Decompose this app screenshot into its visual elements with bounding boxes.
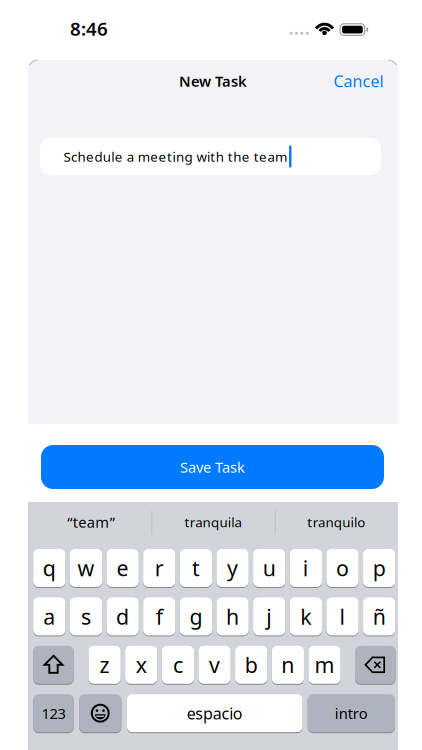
button[interactable]: n [272, 646, 304, 684]
staticText: l [339, 602, 345, 630]
staticText: j [266, 602, 272, 630]
button[interactable]: k [290, 597, 322, 635]
staticText: m [314, 651, 334, 679]
button[interactable]: Task title [40, 138, 381, 175]
staticText: f [156, 602, 163, 630]
staticText: u [263, 554, 276, 582]
button[interactable]: f [143, 597, 175, 635]
staticText: New Task [179, 71, 247, 91]
button[interactable]: t [180, 549, 212, 587]
staticText: o [336, 554, 349, 582]
button[interactable]: intro [308, 694, 395, 732]
button[interactable]: tranquilo [277, 502, 395, 542]
button[interactable]: l [326, 597, 359, 635]
button[interactable]: “team” [32, 502, 150, 542]
staticText: k [300, 602, 311, 630]
staticText: e [117, 554, 129, 582]
staticText: intro [335, 703, 368, 723]
staticText: z [100, 651, 110, 679]
button[interactable]: i [290, 549, 322, 587]
staticText: c [173, 651, 183, 679]
staticText: tranquilo [307, 513, 365, 531]
staticText: a [43, 602, 55, 630]
button[interactable]: b [235, 646, 267, 684]
staticText: p [373, 554, 386, 582]
button[interactable]: Delete [355, 646, 396, 684]
staticText: q [43, 554, 56, 582]
button[interactable]: z [88, 646, 121, 684]
button[interactable]: 123 [33, 694, 74, 732]
button[interactable]: y [216, 549, 249, 587]
button[interactable]: Cancel [333, 70, 383, 92]
button[interactable]: j [253, 597, 285, 635]
staticText: y [227, 554, 238, 582]
button[interactable]: s [70, 597, 102, 635]
button[interactable]: ñ [363, 597, 395, 635]
staticText: tranquila [184, 513, 241, 531]
staticText: g [189, 602, 202, 630]
button[interactable]: Emoji [79, 694, 121, 732]
button[interactable]: q [33, 549, 65, 587]
staticText: v [209, 651, 220, 679]
button[interactable]: h [216, 597, 249, 635]
staticText: espacio [187, 703, 243, 724]
staticText: t [192, 554, 200, 582]
button[interactable]: d [106, 597, 139, 635]
button[interactable]: m [308, 646, 341, 684]
button[interactable]: e [106, 549, 139, 587]
staticText: i [303, 554, 309, 582]
staticText: h [226, 602, 239, 630]
staticText: r [155, 554, 164, 582]
button[interactable]: p [363, 549, 395, 587]
button[interactable]: c [162, 646, 194, 684]
button[interactable]: tranquila [154, 502, 272, 542]
staticText: b [245, 651, 258, 679]
button[interactable]: w [70, 549, 102, 587]
staticText: Cancel [333, 70, 383, 92]
button[interactable]: Shift [33, 646, 74, 684]
staticText: x [136, 651, 147, 679]
button[interactable]: x [125, 646, 157, 684]
staticText: ñ [373, 602, 386, 630]
staticText: Schedule a meeting with the team [63, 148, 287, 165]
staticText: 8:46 [70, 16, 108, 41]
staticText: n [281, 651, 294, 679]
button[interactable]: o [326, 549, 359, 587]
button[interactable]: a [33, 597, 65, 635]
staticText: 123 [41, 703, 65, 723]
staticText: Save Task [180, 457, 245, 477]
staticText: w [77, 554, 94, 582]
button[interactable]: g [180, 597, 212, 635]
staticText: s [81, 602, 91, 630]
staticText: “team” [67, 512, 115, 532]
staticText: d [116, 602, 129, 630]
button[interactable]: v [198, 646, 231, 684]
button[interactable]: r [143, 549, 175, 587]
button[interactable]: espacio [127, 694, 302, 732]
button[interactable]: u [253, 549, 285, 587]
button[interactable]: Save Task [41, 445, 384, 489]
